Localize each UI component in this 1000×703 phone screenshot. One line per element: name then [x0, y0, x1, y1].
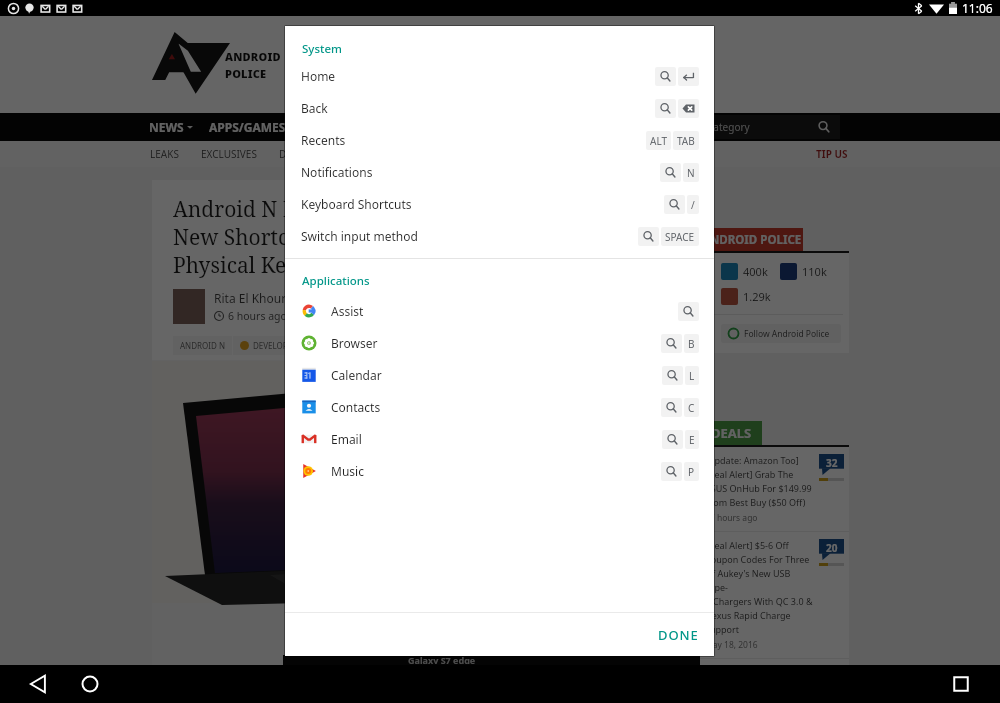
staticText: Follow Android Police	[744, 328, 830, 340]
staticText: Back	[301, 100, 328, 116]
staticText: Switch input method	[301, 228, 418, 244]
staticText: Android N Brings New Shortcuts For Physi…	[173, 195, 368, 279]
button[interactable]: DONE	[650, 620, 707, 650]
button[interactable]: Notifications	[285, 156, 714, 188]
staticText: ANDROID POLICE	[702, 232, 802, 248]
staticText: Applications	[302, 273, 370, 289]
staticText: 11:06	[962, 0, 993, 16]
staticText: DEVELOPMENT	[253, 340, 310, 351]
button[interactable]: Keyboard Shortcuts	[285, 188, 714, 220]
staticText: Notifications	[301, 164, 373, 180]
button[interactable]: Home	[285, 60, 714, 92]
staticText: Browser	[331, 335, 378, 351]
staticText: [Deal Alert] $5-6 Off Coupon Codes For T…	[705, 539, 815, 635]
staticText: C	[688, 401, 695, 415]
button[interactable]: Back	[23, 669, 53, 699]
staticText: ALT	[650, 134, 667, 148]
staticText: ANDROID N	[180, 340, 225, 351]
button[interactable]: Assist	[285, 295, 714, 327]
staticText: Email	[331, 431, 362, 447]
button[interactable]: Home	[75, 669, 105, 699]
staticText: /	[691, 198, 695, 212]
button[interactable]: Email	[285, 423, 714, 455]
staticText: System	[302, 41, 342, 57]
staticText: Contacts	[331, 399, 381, 415]
staticText: ANDROID	[225, 49, 281, 64]
staticText: 20	[826, 541, 838, 555]
button[interactable]: Calendar	[285, 359, 714, 391]
staticText: 32	[826, 456, 838, 470]
staticText: 110k	[802, 264, 827, 279]
staticText: Recents	[301, 132, 346, 148]
staticText: May 18, 2016	[705, 639, 758, 651]
staticText: DOWNLOAD	[279, 147, 338, 161]
staticText: DONE	[658, 626, 699, 644]
staticText: 400k	[743, 264, 768, 279]
button[interactable]: Browser	[285, 327, 714, 359]
staticText: 1.29k	[743, 289, 771, 304]
staticText: Keyboard Shortcuts	[301, 196, 412, 212]
staticText: Galaxy S7 edge	[408, 654, 476, 664]
staticText: P	[688, 465, 695, 479]
staticText: TAB	[677, 134, 695, 148]
staticText: TIP US	[816, 147, 848, 161]
button[interactable]: Recents	[946, 669, 976, 699]
staticText: Select a category	[670, 120, 750, 134]
staticText: LEAKS	[150, 147, 179, 161]
staticText: Rita El Khoury	[214, 290, 293, 306]
button[interactable]: Back	[285, 92, 714, 124]
staticText: 6 hours ago	[228, 309, 287, 323]
button[interactable]: Switch input method	[285, 220, 714, 252]
button[interactable]: Music	[285, 455, 714, 487]
staticText: 17 hours ago	[705, 512, 758, 524]
staticText: APPS/GAMES	[209, 119, 286, 135]
staticText: Home	[301, 68, 336, 84]
staticText: E	[689, 433, 695, 447]
staticText: SPACE	[665, 230, 695, 244]
staticText: NEWS	[325, 340, 348, 351]
staticText: NEWS	[149, 119, 184, 135]
staticText: [Update: Amazon Too] [Deal Alert] Grab T…	[705, 454, 812, 508]
button[interactable]: Recents	[285, 124, 714, 156]
staticText: Assist	[331, 303, 364, 319]
staticText: DEALS	[711, 424, 752, 442]
staticText: N	[687, 166, 695, 180]
staticText: B	[688, 337, 695, 351]
staticText: Music	[331, 463, 364, 479]
staticText: Calendar	[331, 367, 382, 383]
staticText: EXCLUSIVES	[201, 147, 257, 161]
staticText: POLICE	[225, 66, 267, 81]
button[interactable]: Follow Android Police	[721, 324, 841, 343]
button[interactable]: Contacts	[285, 391, 714, 423]
staticText: L	[689, 369, 695, 383]
